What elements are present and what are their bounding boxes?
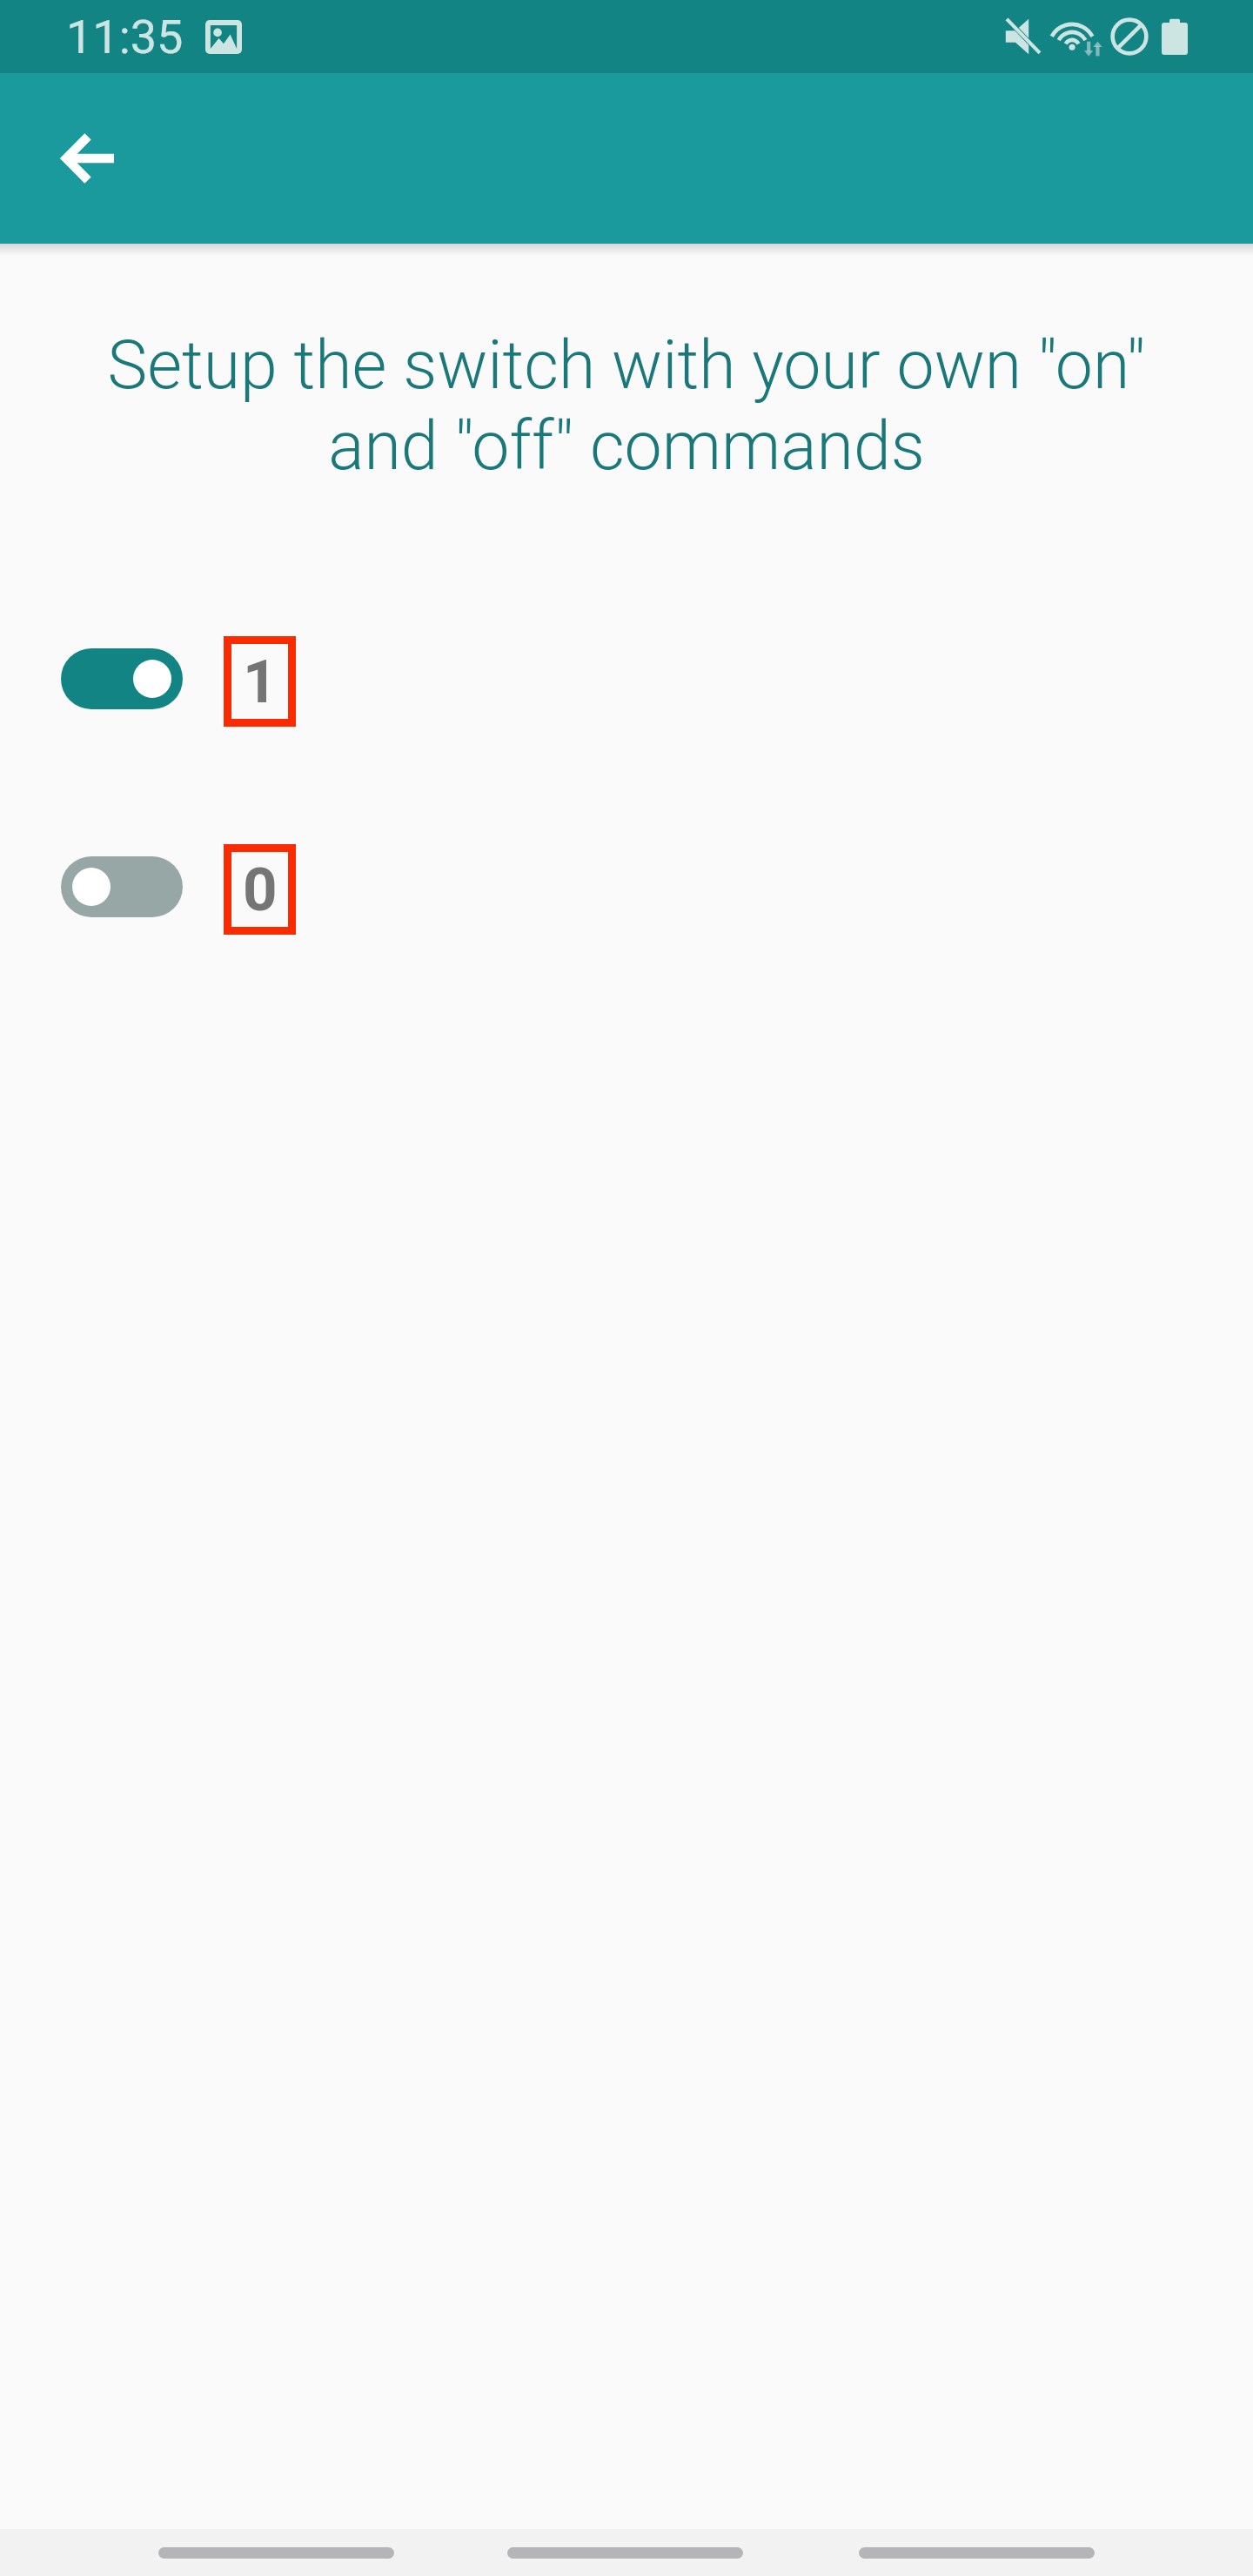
button[interactable]: Switch on — [61, 648, 183, 709]
staticText: Setup the switch with your own "on" and … — [0, 326, 1253, 486]
button[interactable]: Navigation — [507, 2547, 743, 2559]
staticText: 0 — [243, 855, 278, 925]
button[interactable]: Navigation — [859, 2547, 1095, 2559]
staticText: 11:35 — [66, 10, 184, 64]
button[interactable]: Back — [25, 96, 151, 221]
button[interactable]: Navigation — [158, 2547, 394, 2559]
button[interactable]: Switch off — [61, 856, 183, 917]
staticText: 1 — [243, 647, 278, 717]
